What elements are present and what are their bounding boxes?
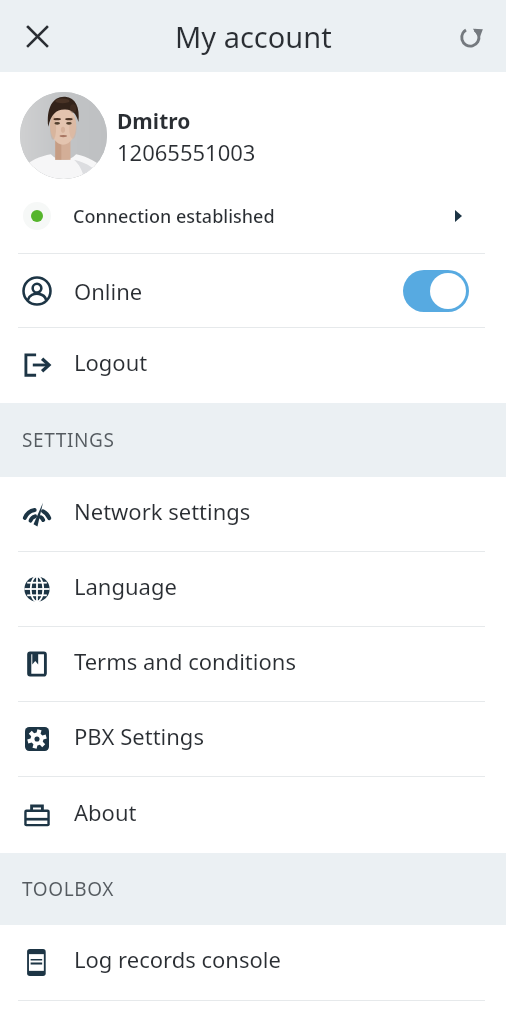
staticText: SETTINGS — [22, 427, 115, 453]
button[interactable]: Logout — [0, 328, 506, 403]
staticText: TOOLBOX — [22, 876, 114, 902]
button[interactable]: Refresh — [448, 12, 496, 60]
staticText: My account — [175, 17, 332, 56]
staticText: Language — [74, 571, 177, 601]
button[interactable]: Language — [0, 552, 506, 626]
staticText: Connection established — [73, 204, 275, 229]
button[interactable]: Log records console — [0, 925, 506, 1000]
button[interactable]: Network settings — [0, 477, 506, 551]
staticText: Dmitro — [117, 107, 191, 136]
button[interactable]: Online toggle — [403, 270, 469, 312]
staticText: About — [74, 797, 137, 827]
staticText: Log records console — [74, 944, 281, 974]
staticText: Network settings — [74, 496, 251, 526]
staticText: Logout — [74, 347, 148, 377]
button[interactable]: Terms and conditions — [0, 627, 506, 701]
button[interactable]: PBX Settings — [0, 702, 506, 776]
button[interactable]: Online — [0, 254, 506, 327]
staticText: Online — [74, 276, 143, 306]
staticText: Terms and conditions — [74, 646, 296, 676]
staticText: 12065551003 — [117, 137, 256, 167]
staticText: PBX Settings — [74, 721, 204, 751]
button[interactable]: Close — [13, 12, 61, 60]
button[interactable]: About — [0, 777, 506, 853]
button[interactable]: Dmitro — [0, 72, 506, 179]
button[interactable]: Connection established — [0, 179, 506, 253]
